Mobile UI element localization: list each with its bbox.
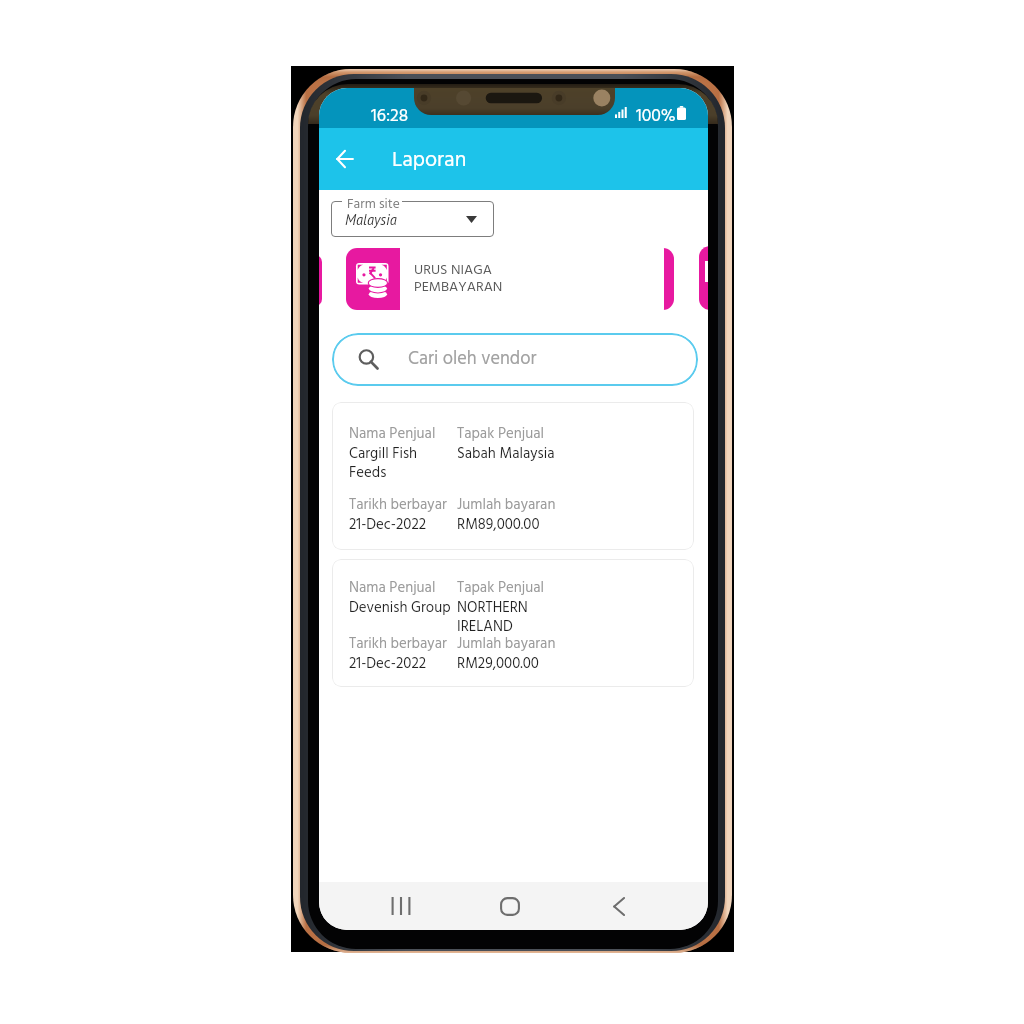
staticText: 21-Dec-2022	[349, 513, 427, 537]
button[interactable]: Recent apps	[366, 882, 436, 930]
staticText: Sabah Malaysia	[457, 442, 555, 466]
button[interactable]: Cari oleh vendor	[332, 333, 698, 386]
staticText: NORTHERN IRELAND	[457, 596, 528, 639]
button[interactable]: URUS NIAGA PEMBAYARAN	[346, 248, 674, 310]
button[interactable]: Nama Penjual	[332, 402, 694, 550]
staticText: Tapak Penjual	[457, 576, 544, 600]
staticText: URUS NIAGA PEMBAYARAN	[414, 259, 503, 299]
staticText: Tarikh berbayar	[349, 493, 447, 517]
staticText: RM89,000.00	[457, 513, 540, 537]
button[interactable]: Back	[584, 882, 654, 930]
staticText: Nama Penjual	[349, 576, 436, 600]
staticText: 16:28	[371, 102, 409, 130]
button[interactable]: Home	[475, 882, 545, 930]
staticText: 21-Dec-2022	[349, 652, 427, 676]
staticText: Tapak Penjual	[457, 422, 544, 446]
staticText: Jumlah bayaran	[457, 632, 556, 656]
staticText: 100%	[636, 102, 676, 130]
button[interactable]: Nama Penjual	[332, 559, 694, 687]
staticText: Tarikh berbayar	[349, 632, 447, 656]
button[interactable]: Malaysia	[331, 201, 494, 237]
staticText: Cargill Fish Feeds	[349, 442, 418, 485]
staticText: Malaysia	[345, 210, 397, 229]
staticText: Cari oleh vendor	[408, 345, 537, 374]
staticText: Jumlah bayaran	[457, 493, 556, 517]
staticText: Farm site	[347, 194, 400, 216]
staticText: Laporan	[392, 143, 467, 177]
staticText: RM29,000.00	[457, 652, 539, 676]
staticText: Devenish Group	[349, 596, 451, 620]
staticText: Nama Penjual	[349, 422, 436, 446]
button[interactable]: Back	[322, 136, 368, 182]
